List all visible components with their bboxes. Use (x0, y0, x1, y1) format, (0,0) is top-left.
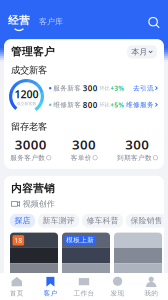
staticText: 发现 (111, 289, 125, 297)
staticText: +3% (110, 84, 124, 93)
staticText: 800 (83, 99, 98, 110)
staticText: 300 (72, 135, 96, 153)
button[interactable]: 300 (111, 135, 164, 162)
staticText: 本月 (131, 47, 147, 57)
staticText: 修车科普 (86, 216, 118, 226)
button[interactable]: 视频模板 (62, 233, 110, 279)
staticText: 服务客户数 (10, 154, 45, 162)
staticText: 客户 (43, 289, 57, 297)
button[interactable]: 新车测评 (38, 214, 79, 228)
button[interactable]: 视频模板 (10, 233, 58, 279)
button[interactable]: 客户 (34, 272, 67, 300)
button[interactable]: 300 (57, 135, 111, 162)
staticText: 1200 (14, 87, 38, 101)
button[interactable]: 修车科普 (82, 214, 123, 228)
staticText: 300 (83, 83, 98, 93)
staticText: 18 (14, 236, 22, 245)
staticText: 首页 (10, 289, 24, 297)
button[interactable]: 发现 (101, 272, 134, 300)
button[interactable]: 保险销售 (126, 214, 167, 228)
button[interactable]: 我的 (134, 272, 168, 300)
staticText: 内容营销 (11, 182, 55, 195)
staticText: 300 (125, 135, 149, 153)
staticText: 到期客户数 (117, 154, 152, 162)
staticText: 3000 (15, 135, 47, 153)
staticText: 工作台 (73, 289, 94, 297)
staticText: 维修服务 (126, 101, 154, 109)
staticText: 成交新客数 (16, 101, 36, 106)
staticText: 视频创作 (23, 199, 55, 209)
staticText: 服务新客 (53, 84, 81, 92)
button[interactable]: 3000 (4, 135, 57, 162)
staticText: 保险销售 (130, 216, 162, 226)
staticText: 环比 (99, 85, 109, 91)
staticText: 经营 (8, 14, 30, 27)
staticText: 成交新客 (11, 64, 47, 76)
staticText: 环比 (99, 101, 109, 108)
staticText: 管理客户 (11, 45, 55, 58)
staticText: 探店 (14, 216, 30, 226)
button[interactable]: 探店 (10, 214, 35, 228)
staticText: 模板上新 (66, 236, 94, 244)
button[interactable]: 去引流 (133, 84, 158, 92)
staticText: 客户库 (39, 17, 63, 27)
staticText: 客单价 (71, 154, 92, 162)
staticText: 新车测评 (42, 216, 74, 226)
staticText: 我的 (144, 289, 158, 297)
button[interactable]: 本月 (127, 45, 157, 58)
button[interactable]: 维修服务 (126, 101, 158, 109)
staticText: 留存老客 (11, 121, 47, 132)
button[interactable]: 工作台 (67, 272, 101, 300)
staticText: +5% (110, 100, 124, 109)
staticText: 维修新客 (53, 101, 81, 109)
button[interactable]: 搜索 (148, 16, 160, 31)
button[interactable]: 经营 (8, 14, 30, 31)
button[interactable]: 视频模板 (114, 233, 162, 279)
button[interactable]: 首页 (0, 272, 34, 300)
button[interactable]: 客户库 (30, 17, 63, 31)
staticText: 去引流 (133, 84, 154, 92)
